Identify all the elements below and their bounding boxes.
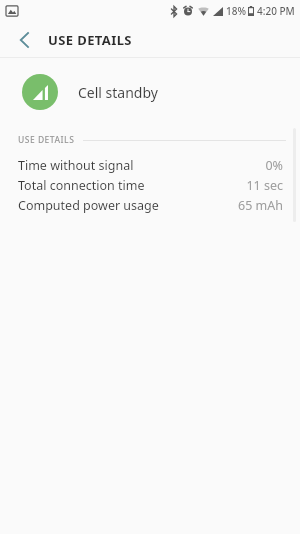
staticText: 18%	[226, 4, 246, 18]
staticText: 65 mAh	[238, 197, 283, 214]
staticText: USE DETAILS	[18, 134, 75, 146]
button[interactable]: Computed power usage	[0, 195, 300, 215]
staticText: Computed power usage	[18, 197, 159, 214]
staticText: Cell standby	[78, 83, 158, 102]
staticText: Time without signal	[18, 157, 134, 174]
staticText: USE DETAILS	[48, 31, 132, 49]
button[interactable]: Total connection time	[0, 175, 300, 195]
button[interactable]: Time without signal	[0, 155, 300, 175]
staticText: 11 sec	[246, 177, 283, 194]
button[interactable]: Back	[10, 26, 38, 54]
staticText: 4:20 PM	[257, 4, 295, 18]
staticText: 0%	[265, 157, 283, 174]
button[interactable]: Cell standby	[0, 67, 300, 117]
staticText: Total connection time	[18, 177, 145, 194]
